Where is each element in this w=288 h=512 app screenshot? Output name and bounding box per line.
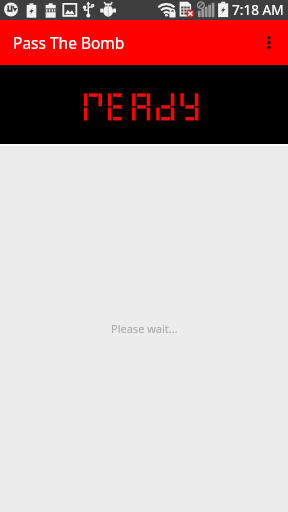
staticText: Pass The Bomb: [13, 32, 125, 53]
staticText: 7:18 AM: [232, 0, 284, 18]
staticText: Please wait...: [111, 321, 178, 336]
button[interactable]: More options: [249, 20, 288, 65]
